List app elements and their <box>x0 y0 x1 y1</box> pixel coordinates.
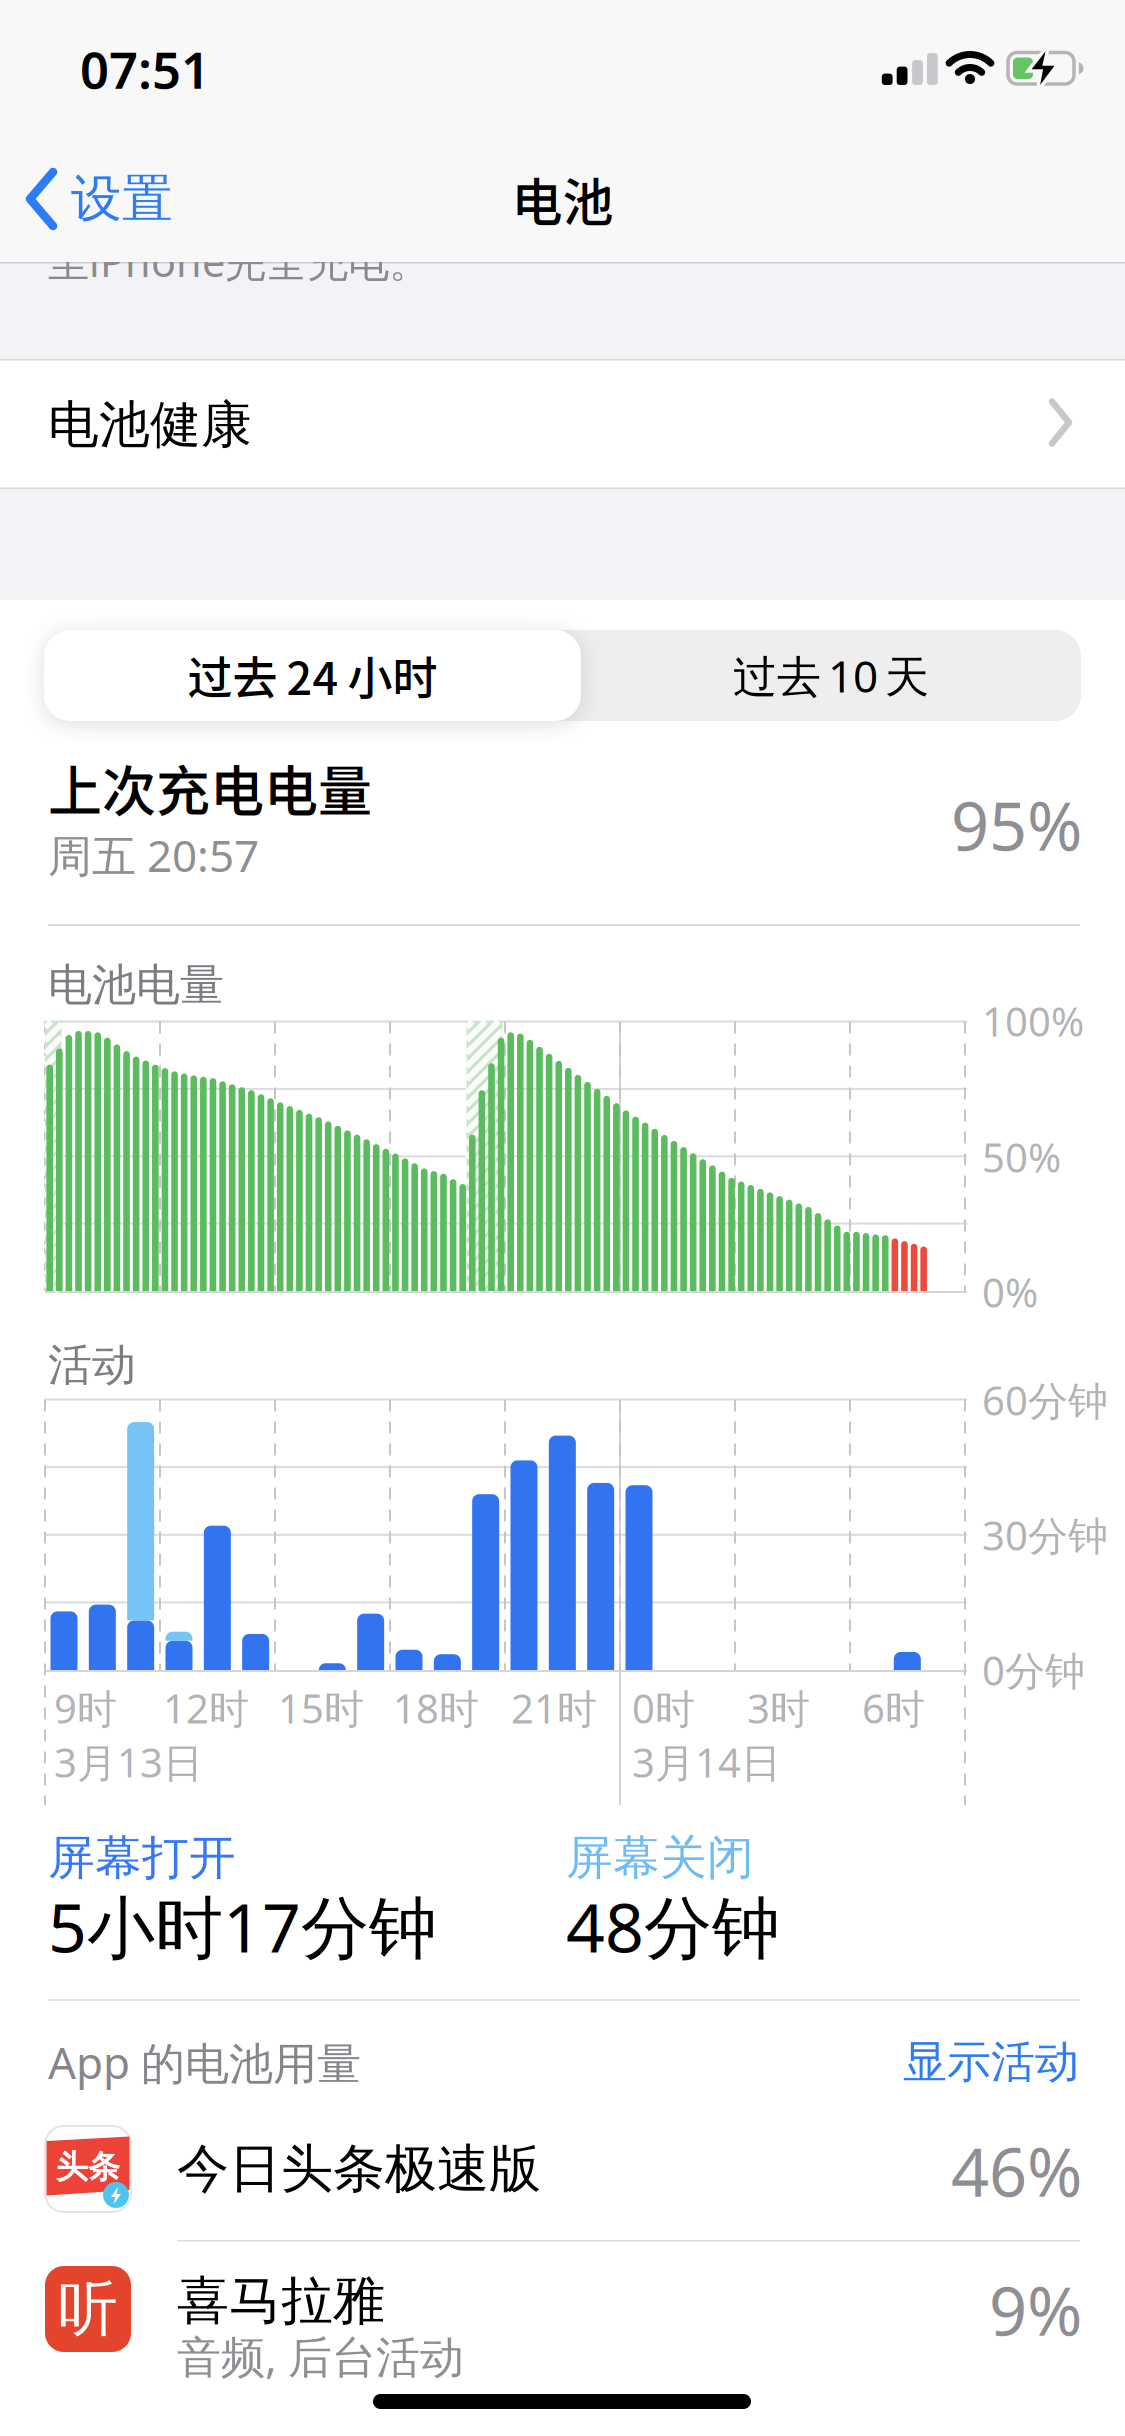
staticText: 95% <box>951 781 1082 869</box>
button[interactable]: 听 <box>0 2242 1125 2402</box>
button[interactable]: 显示活动 <box>0 0 300 76</box>
staticText: 21时 <box>511 1681 597 1734</box>
staticText: 至iPhone完全充电。 <box>48 234 430 288</box>
staticText: 0时 <box>632 1681 695 1734</box>
staticText: 屏幕打开 <box>48 1829 236 1887</box>
staticText: 3月14日 <box>632 1735 781 1788</box>
staticText: 5小时17分钟 <box>48 1881 437 1971</box>
staticText: 0分钟 <box>982 1643 1085 1696</box>
button[interactable]: 过去 24 小时 <box>44 630 581 721</box>
staticText: 活动 <box>48 1338 136 1392</box>
staticText: 周五 20:57 <box>48 826 259 884</box>
staticText: 100% <box>982 994 1084 1047</box>
staticText: 喜马拉雅 <box>177 2269 385 2333</box>
staticText: 30分钟 <box>982 1508 1108 1561</box>
staticText: 0% <box>982 1265 1038 1318</box>
staticText: App 的电池用量 <box>48 2033 361 2091</box>
staticText: 50% <box>982 1130 1061 1183</box>
staticText: 设置 <box>71 168 173 230</box>
staticText: 48分钟 <box>566 1881 780 1971</box>
staticText: 电池电量 <box>48 958 224 1012</box>
staticText: 上次充电电量 <box>48 749 372 827</box>
button[interactable]: 电池健康 <box>0 359 1125 489</box>
staticText: 15时 <box>278 1681 364 1734</box>
button[interactable]: 头条 <box>0 2108 1125 2240</box>
staticText: 9% <box>989 2266 1082 2354</box>
staticText: 6时 <box>862 1681 925 1734</box>
staticText: 显示活动 <box>903 2035 1079 2089</box>
staticText: 过去 10 天 <box>733 646 929 705</box>
staticText: 过去 24 小时 <box>187 643 437 708</box>
staticText: 60分钟 <box>982 1373 1108 1426</box>
staticText: 今日头条极速版 <box>177 2137 541 2201</box>
staticText: 18时 <box>393 1681 479 1734</box>
staticText: 音频, 后台活动 <box>177 2327 464 2385</box>
staticText: 9时 <box>54 1681 117 1734</box>
staticText: 46% <box>951 2127 1082 2215</box>
button[interactable]: 设置 <box>25 168 173 230</box>
staticText: 3时 <box>747 1681 810 1734</box>
staticText: 屏幕关闭 <box>566 1829 754 1887</box>
staticText: 12时 <box>163 1681 249 1734</box>
staticText: 07:51 <box>80 35 210 103</box>
staticText: 电池 <box>511 162 613 236</box>
button[interactable]: 过去 10 天 <box>581 630 1081 721</box>
staticText: 3月13日 <box>54 1735 203 1788</box>
staticText: 听 <box>58 2272 118 2346</box>
staticText: 电池健康 <box>48 394 252 456</box>
staticText: 头条 <box>56 2147 120 2187</box>
